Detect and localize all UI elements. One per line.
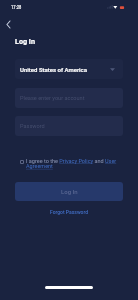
staticText: 17:28 [11, 5, 22, 11]
button[interactable]: Log In [15, 182, 123, 201]
staticText: Log In [15, 37, 35, 45]
button[interactable]: Please enter your account [15, 88, 123, 108]
button[interactable]: Back [1, 17, 15, 31]
button[interactable]: Agree to terms checkbox [20, 160, 24, 164]
button[interactable]: United States of America [15, 59, 123, 79]
staticText: Password [20, 123, 45, 130]
staticText: Log In [61, 188, 78, 195]
staticText: I agree to the Privacy Policy and User A… [26, 158, 121, 170]
staticText: Please enter your account [20, 95, 85, 102]
staticText: United States of America [20, 66, 87, 73]
button[interactable]: Forgot Password [44, 206, 94, 218]
